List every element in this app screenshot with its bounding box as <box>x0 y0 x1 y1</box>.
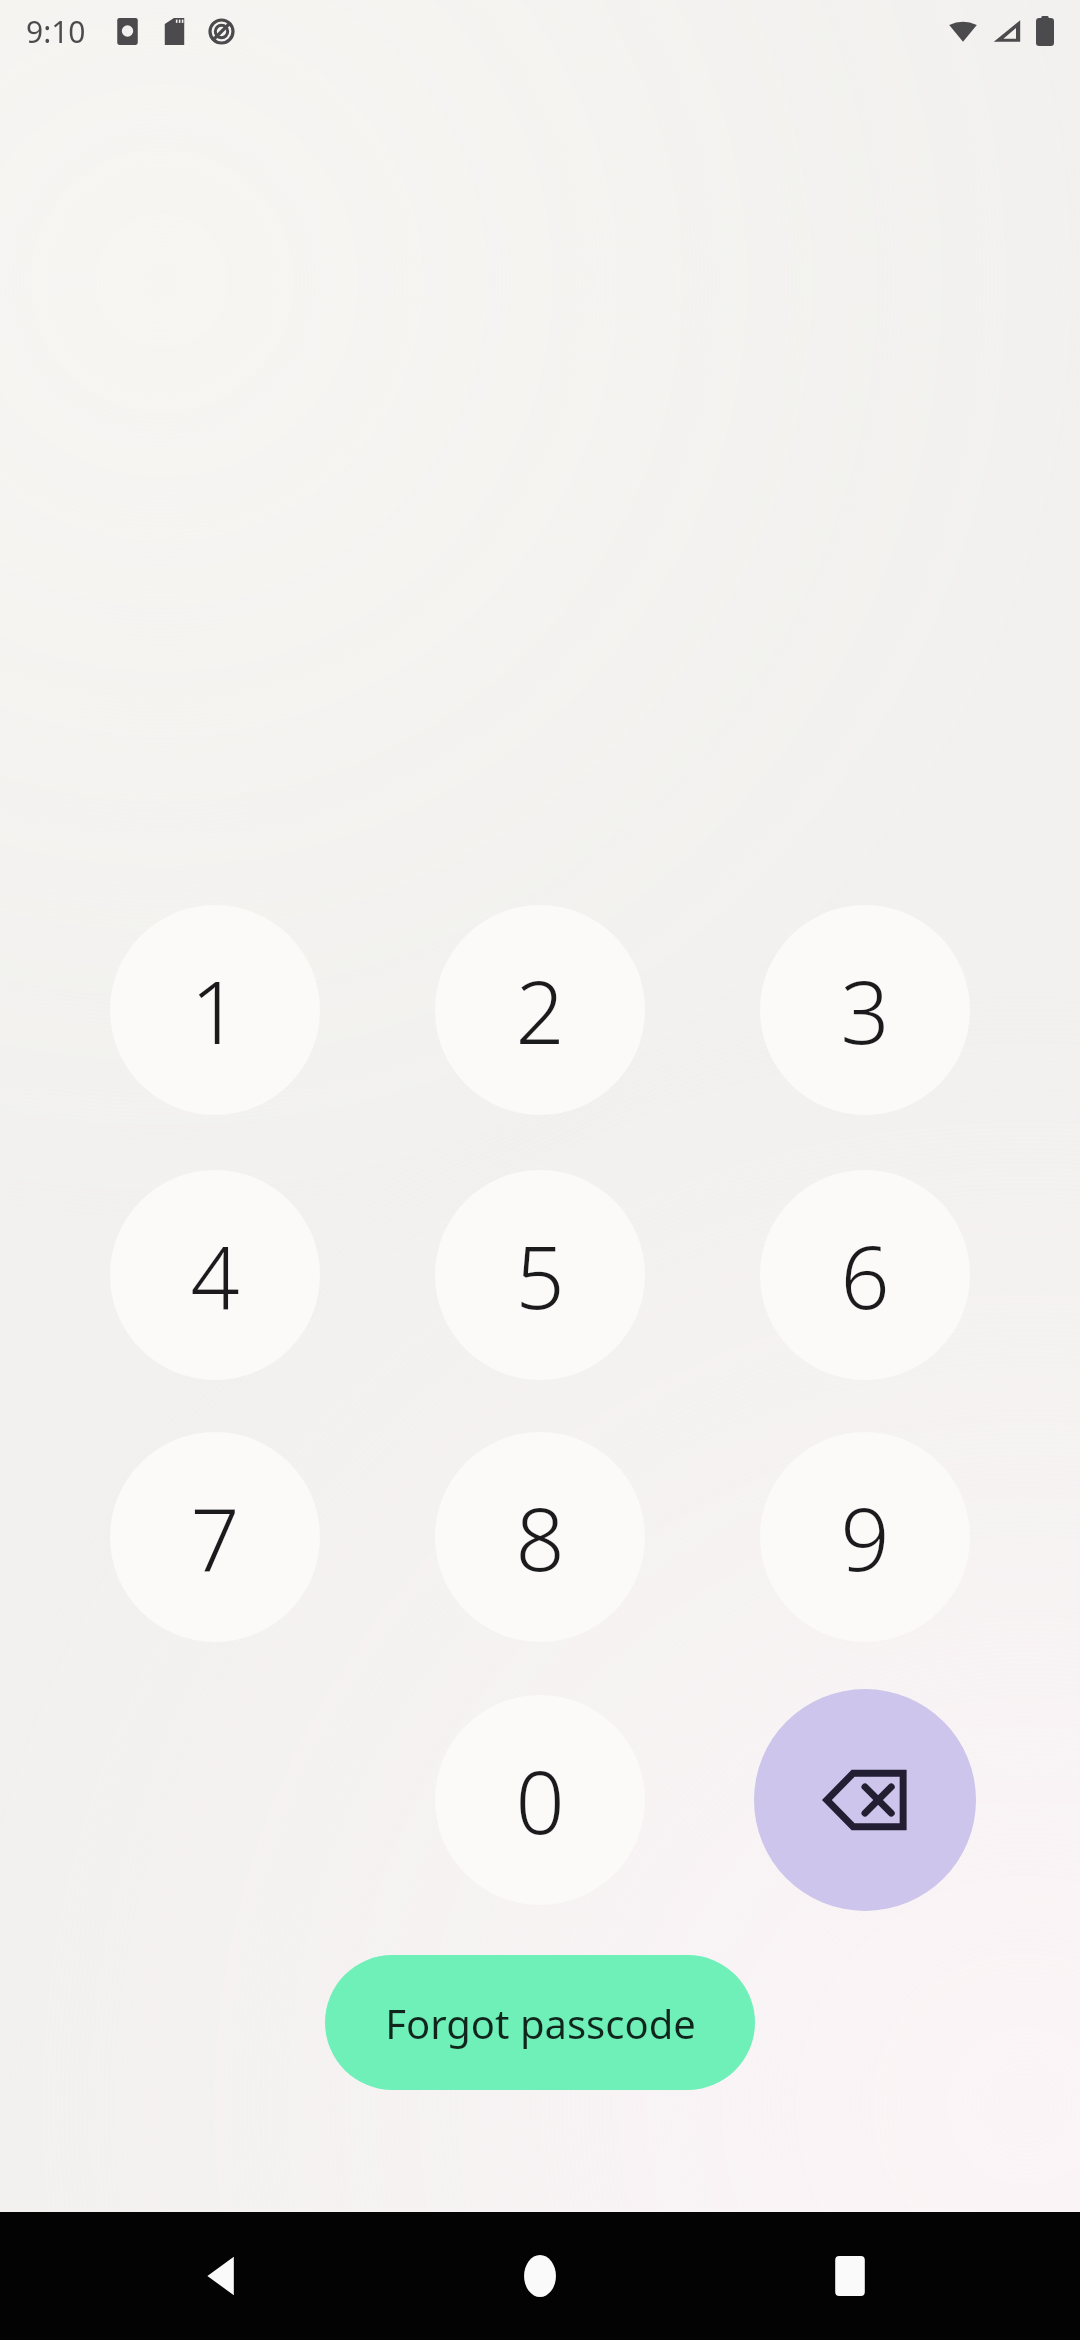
button[interactable]: 8 <box>435 1432 645 1642</box>
button[interactable]: Forgot passcode <box>325 1955 755 2090</box>
staticText: 0 <box>515 1742 565 1859</box>
staticText: 3 <box>840 952 890 1069</box>
staticText: 5 <box>515 1217 565 1334</box>
button[interactable]: Back <box>160 2212 290 2340</box>
staticText: 9:10 <box>26 11 86 52</box>
staticText: 2 <box>515 952 565 1069</box>
button[interactable]: Recent apps <box>785 2212 915 2340</box>
staticText: 9 <box>840 1479 890 1596</box>
button[interactable]: 3 <box>760 905 970 1115</box>
staticText: 7 <box>190 1479 240 1596</box>
staticText: 6 <box>840 1217 890 1334</box>
button[interactable]: 9 <box>760 1432 970 1642</box>
button[interactable]: 2 <box>435 905 645 1115</box>
button[interactable]: 7 <box>110 1432 320 1642</box>
button[interactable]: 5 <box>435 1170 645 1380</box>
button[interactable]: Home <box>475 2212 605 2340</box>
staticText: Forgot passcode <box>385 1996 696 2050</box>
button[interactable]: 4 <box>110 1170 320 1380</box>
button[interactable]: 1 <box>110 905 320 1115</box>
staticText: 1 <box>190 952 240 1069</box>
button[interactable]: 0 <box>435 1695 645 1905</box>
staticText: 8 <box>515 1479 565 1596</box>
button[interactable]: Backspace <box>754 1689 976 1911</box>
staticText: 4 <box>190 1217 240 1334</box>
button[interactable]: 6 <box>760 1170 970 1380</box>
